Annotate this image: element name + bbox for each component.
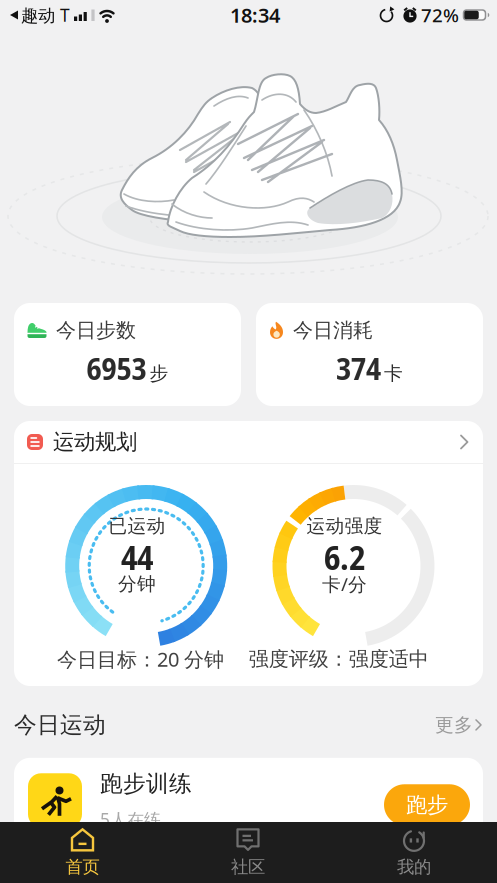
button[interactable]: 今日步数 [14,303,241,406]
staticText: 趣动 T [21,3,70,26]
staticText: 6953 [86,347,146,389]
staticText: 运动规划 [53,429,137,455]
staticText: 运动强度 [306,514,382,537]
staticText: 分钟 [118,572,156,595]
staticText: 首页 [65,856,99,878]
staticText: 374 [336,347,381,389]
staticText: 更多 [435,713,473,736]
staticText: 今日消耗 [293,318,373,343]
staticText: 18:34 [230,2,280,28]
button[interactable]: 运动规划 [14,421,483,463]
button[interactable]: 首页 [0,822,165,883]
staticText: 今日运动 [14,711,106,739]
staticText: 步 [149,362,168,385]
staticText: 卡/分 [322,572,367,596]
staticText: 今日目标：20 分钟 [57,646,224,672]
staticText: 已运动 [108,514,165,537]
staticText: 强度评级：强度适中 [249,647,429,671]
staticText: 今日步数 [56,318,136,343]
button[interactable]: 社区 [165,822,331,883]
staticText: 跑步 [406,792,448,818]
staticText: 72% [421,3,459,27]
staticText: 44 [121,534,153,580]
button[interactable]: 跑步训练 [14,758,483,866]
button[interactable]: 更多 [435,713,483,736]
button[interactable]: 我的 [331,822,497,883]
button[interactable]: 今日消耗 [256,303,483,406]
staticText: 6.2 [324,534,365,580]
staticText: 我的 [397,856,431,878]
staticText: 跑步训练 [100,770,192,798]
staticText: 社区 [231,856,265,878]
staticText: 卡 [384,362,403,385]
staticText: 5人在练 [100,808,161,831]
button[interactable]: 跑步 [384,784,470,825]
